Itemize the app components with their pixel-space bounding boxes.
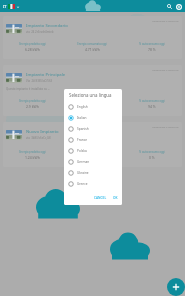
button[interactable]: Impianto Principale [3, 65, 182, 116]
staticText: Impianto Secondario [26, 23, 68, 29]
staticText: Energia prodotta oggi [19, 150, 46, 154]
button[interactable]: Search [165, 2, 174, 11]
staticText: France [77, 138, 87, 142]
button[interactable]: Settings [174, 2, 183, 11]
staticText: Questo impianto è installato su ... [6, 87, 50, 91]
button[interactable]: Ukraine [64, 167, 122, 178]
staticText: Aggiornato 2 minuti fa [152, 125, 179, 128]
staticText: % autoconsumo oggi [139, 150, 165, 154]
staticText: 6.28 kWh [25, 47, 40, 52]
button[interactable]: Add plant [167, 278, 185, 296]
staticText: via 24 2r3cvdr4mtvb [26, 30, 54, 34]
button[interactable]: Impianto Secondario [3, 16, 182, 59]
staticText: 1.24 kWh [25, 155, 40, 160]
staticText: 94 % [148, 104, 156, 109]
staticText: 78 % [148, 47, 156, 52]
button[interactable]: Spanish [64, 123, 122, 134]
staticText: German [77, 160, 90, 164]
button[interactable]: Nuovo Impianto [3, 122, 182, 167]
staticText: Nuovo Impianto [26, 129, 59, 135]
staticText: OK [113, 196, 118, 200]
staticText: Via 2# 8365/aC/563 [26, 79, 53, 83]
staticText: Seleziona una lingua [69, 92, 112, 98]
staticText: 0 % [149, 155, 155, 160]
staticText: % autoconsumo oggi [139, 99, 165, 103]
staticText: via 3b83/c6eCc,G8 [26, 136, 51, 140]
staticText: Impianto Principale [26, 72, 66, 78]
button[interactable]: Polska [64, 145, 122, 156]
staticText: English [77, 105, 88, 109]
staticText: Ukraine [77, 171, 89, 175]
button[interactable]: Change language [3, 4, 20, 9]
staticText: 2.9 kWh [26, 104, 39, 109]
staticText: % autoconsumo oggi [139, 42, 165, 46]
button[interactable]: German [64, 156, 122, 167]
staticText: Aggiornato 2 minuti fa [152, 68, 179, 71]
staticText: CANCEL [94, 196, 107, 200]
button[interactable]: OK [112, 195, 119, 201]
staticText: Energia consumata oggi [77, 150, 107, 154]
staticText: Aggiornato 2 minuti fa [152, 19, 179, 22]
button[interactable]: France [64, 134, 122, 145]
staticText: 4.71 kWh [85, 47, 100, 52]
staticText: Energia prodotta oggi [19, 42, 46, 46]
staticText: Spanish [77, 127, 89, 131]
staticText: Energia prodotta oggi [19, 99, 46, 103]
button[interactable]: English [64, 101, 122, 112]
button[interactable]: Greece [64, 178, 122, 189]
staticText: Italian [77, 116, 87, 120]
staticText: Greece [77, 182, 88, 186]
staticText: IT [3, 4, 7, 9]
staticText: 0 kWh [87, 104, 98, 109]
staticText: Energia consumata oggi [77, 42, 107, 46]
staticText: Polska [77, 149, 87, 153]
button[interactable]: CANCEL [93, 195, 108, 201]
button[interactable]: Italian [64, 112, 122, 123]
